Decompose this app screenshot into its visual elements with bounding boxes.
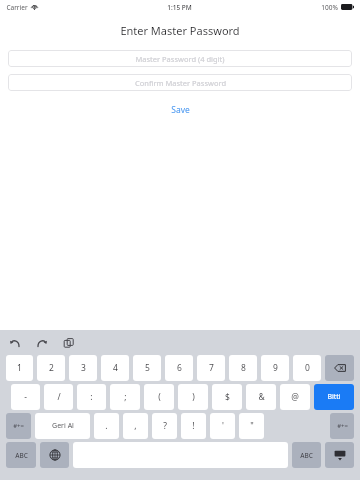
button[interactable]: 5 <box>133 355 161 381</box>
button[interactable]: 4 <box>101 355 129 381</box>
button[interactable]: 2 <box>37 355 65 381</box>
button[interactable]: Hide keyboard <box>325 442 354 468</box>
staticText: ABC <box>300 451 313 460</box>
button[interactable]: ( <box>144 384 174 410</box>
button[interactable]: Bitti <box>314 384 354 410</box>
button[interactable]: - <box>11 384 40 410</box>
button[interactable]: 8 <box>229 355 257 381</box>
staticText: 1 <box>17 362 22 374</box>
staticText: Confirm Master Password <box>135 78 226 88</box>
staticText: ) <box>192 391 195 403</box>
staticText: 2 <box>49 362 54 374</box>
button[interactable]: #+= <box>6 413 31 439</box>
button[interactable]: 0 <box>293 355 321 381</box>
button[interactable]: 7 <box>197 355 225 381</box>
button[interactable]: Geri Al <box>35 413 90 439</box>
staticText: ? <box>163 420 167 432</box>
button[interactable]: Backspace <box>325 355 354 381</box>
button[interactable]: . <box>94 413 119 439</box>
button[interactable]: Save <box>159 102 202 118</box>
staticText: 5 <box>145 362 150 374</box>
staticText: : <box>90 391 93 403</box>
button[interactable]: : <box>77 384 106 410</box>
staticText: ; <box>124 391 127 403</box>
staticText: 0 <box>305 362 310 374</box>
staticText: / <box>57 391 61 403</box>
staticText: 9 <box>273 362 278 374</box>
staticText: Enter Master Password <box>120 23 240 38</box>
staticText: Master Password (4 digit) <box>135 54 225 64</box>
button[interactable]: @ <box>280 384 310 410</box>
button[interactable]: 1 <box>6 355 33 381</box>
button[interactable]: ! <box>181 413 206 439</box>
staticText: 100% <box>321 3 338 12</box>
button[interactable]: 6 <box>165 355 193 381</box>
staticText: Geri Al <box>52 421 74 431</box>
staticText: #+= <box>337 422 348 430</box>
staticText: ! <box>192 420 195 432</box>
staticText: 6 <box>177 362 182 374</box>
button[interactable]: ABC <box>6 442 36 468</box>
button[interactable]: 9 <box>261 355 289 381</box>
button[interactable]: ; <box>110 384 140 410</box>
button[interactable]: ? <box>152 413 177 439</box>
button[interactable]: $ <box>212 384 242 410</box>
button[interactable]: " <box>239 413 264 439</box>
staticText: 3 <box>81 362 86 374</box>
button[interactable]: , <box>123 413 148 439</box>
button[interactable]: Confirm Master Password <box>8 74 352 91</box>
staticText: - <box>24 391 27 403</box>
button[interactable]: Master Password (4 digit) <box>8 50 352 67</box>
staticText: ' <box>222 420 224 432</box>
staticText: @ <box>291 391 299 403</box>
staticText: 1:15 PM <box>167 3 192 12</box>
button[interactable]: ' <box>210 413 235 439</box>
staticText: 7 <box>209 362 214 374</box>
staticText: , <box>134 420 137 432</box>
staticText: & <box>258 391 265 403</box>
button[interactable]: & <box>246 384 276 410</box>
button[interactable]: ) <box>178 384 208 410</box>
staticText: Carrier <box>6 3 28 12</box>
button[interactable]: Copy <box>61 335 77 351</box>
staticText: " <box>250 420 254 432</box>
button[interactable]: #+= <box>330 413 354 439</box>
staticText: Bitti <box>327 392 341 402</box>
staticText: . <box>105 420 108 432</box>
staticText: ABC <box>15 451 28 460</box>
staticText: Save <box>171 104 190 116</box>
staticText: 8 <box>241 362 246 374</box>
button[interactable]: ABC <box>292 442 321 468</box>
button[interactable]: Undo <box>7 335 23 351</box>
staticText: 4 <box>113 362 118 374</box>
button[interactable]: Next keyboard <box>40 442 69 468</box>
staticText: ( <box>158 391 161 403</box>
button[interactable]: / <box>44 384 73 410</box>
staticText: #+= <box>13 422 24 430</box>
staticText: $ <box>225 391 230 403</box>
button[interactable]: 3 <box>69 355 97 381</box>
button[interactable]: Redo <box>34 335 50 351</box>
